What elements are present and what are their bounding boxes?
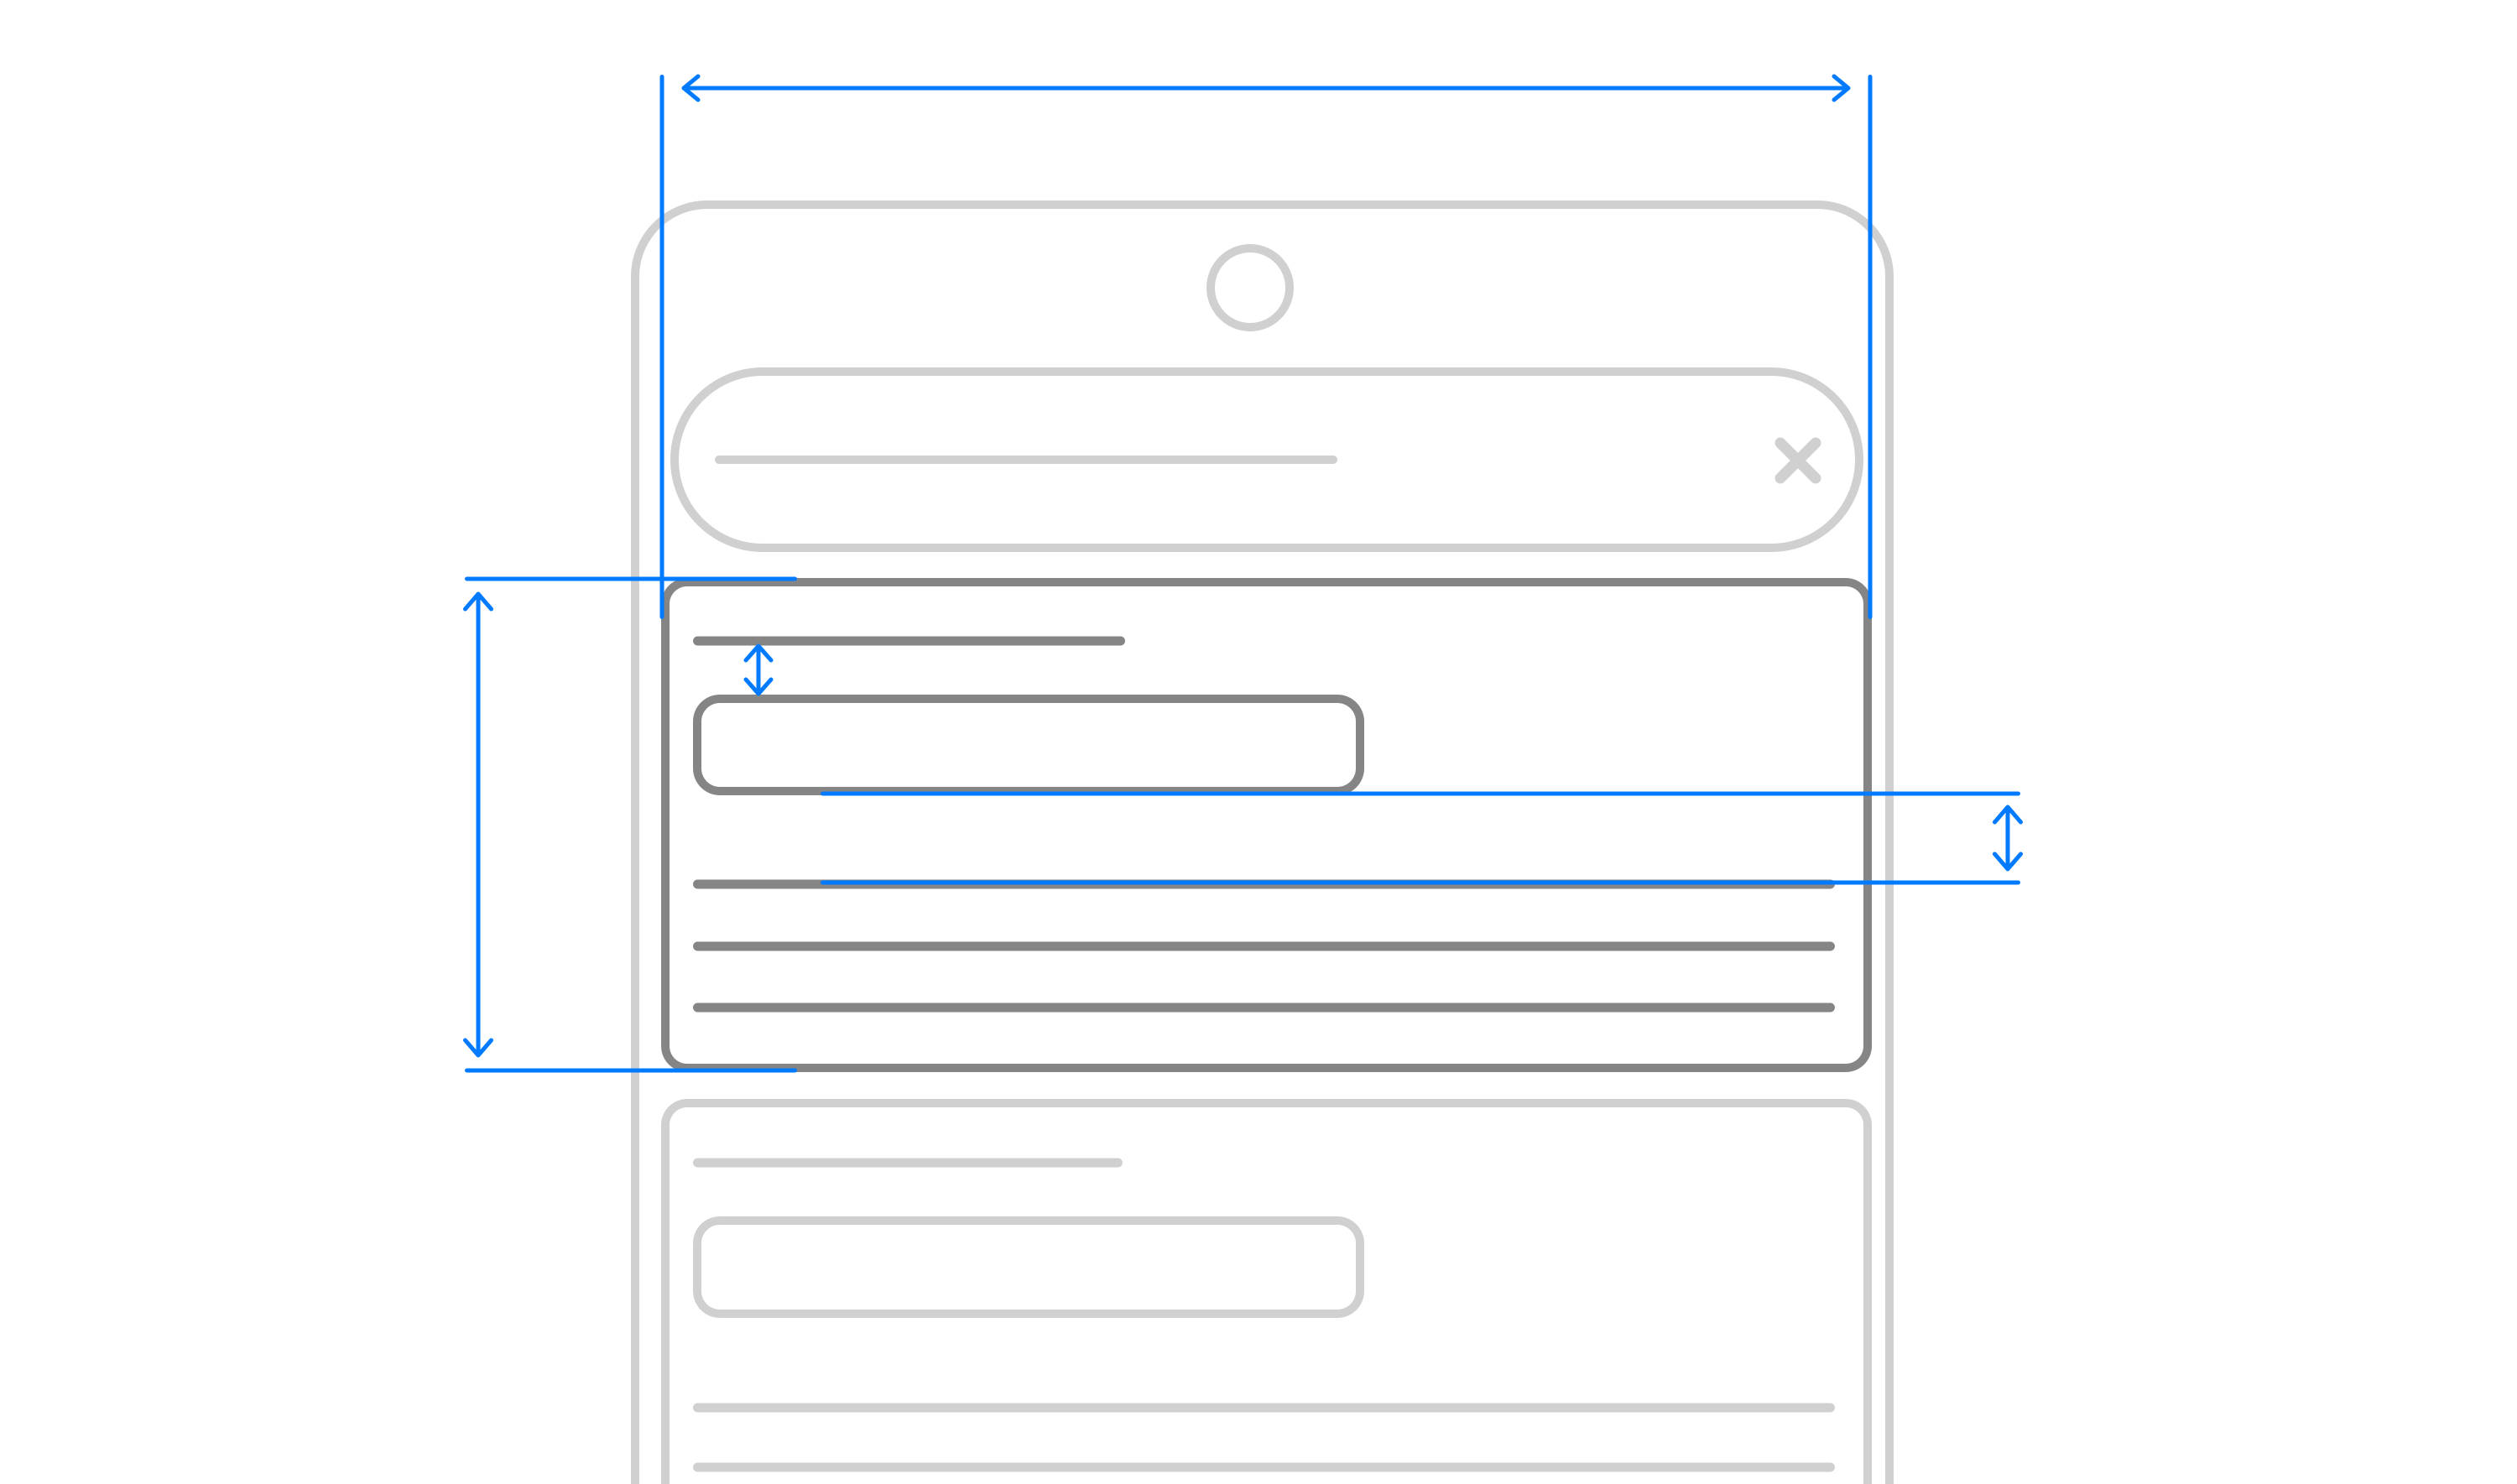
button[interactable]: Search [675, 372, 1859, 548]
button[interactable]: Card [665, 1103, 1868, 1484]
button[interactable]: Selected card [665, 582, 1868, 1068]
